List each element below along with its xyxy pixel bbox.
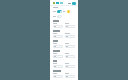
button[interactable] (53, 25, 63, 28)
button[interactable]: Toggle off (57, 15, 62, 18)
button[interactable] (53, 65, 63, 68)
button[interactable] (65, 55, 75, 58)
button[interactable]: App icon (53, 2, 55, 4)
button[interactable] (65, 35, 75, 38)
button[interactable]: Toggle on (57, 10, 62, 13)
button[interactable]: Status indicator (67, 10, 70, 13)
button[interactable] (65, 65, 75, 68)
button[interactable] (53, 35, 63, 38)
button[interactable] (53, 45, 63, 48)
button[interactable] (65, 45, 75, 48)
button[interactable] (65, 25, 75, 28)
button[interactable] (53, 55, 63, 58)
button[interactable] (65, 75, 75, 78)
button[interactable]: Primary action (72, 2, 76, 5)
button[interactable] (53, 75, 63, 78)
